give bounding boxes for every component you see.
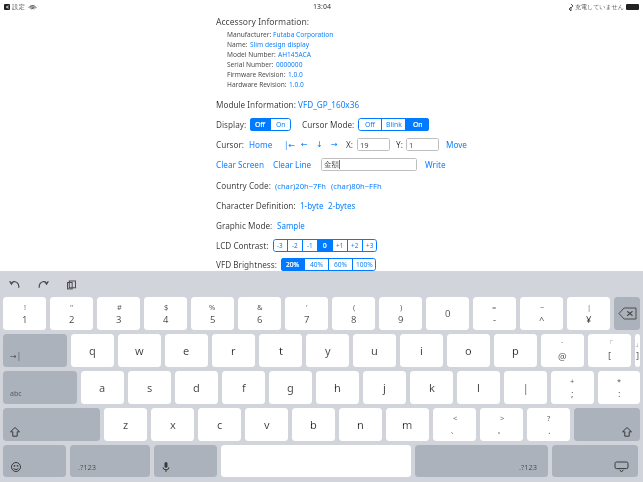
button[interactable]: h bbox=[316, 371, 359, 404]
button[interactable]: Cursor right bbox=[327, 140, 342, 149]
button[interactable]: Backspace bbox=[614, 297, 640, 330]
button[interactable]: Shift bbox=[3, 408, 100, 441]
button[interactable]: r bbox=[212, 334, 255, 367]
button[interactable]: +3 bbox=[363, 239, 377, 252]
button[interactable]: ( bbox=[332, 297, 375, 330]
button[interactable]: | bbox=[504, 371, 547, 404]
button[interactable]: c bbox=[198, 408, 241, 441]
button[interactable]: Move bbox=[446, 139, 467, 150]
button[interactable]: & bbox=[238, 297, 281, 330]
button[interactable]: ' bbox=[285, 297, 328, 330]
button[interactable]: < bbox=[4, 4, 10, 10]
button[interactable]: -2 bbox=[288, 239, 302, 252]
button[interactable]: Dictation bbox=[154, 445, 217, 477]
button[interactable]: On bbox=[406, 118, 429, 131]
button[interactable]: x bbox=[151, 408, 194, 441]
button[interactable]: Emoji bbox=[3, 445, 66, 477]
button[interactable]: 0 bbox=[318, 239, 332, 252]
button[interactable]: Tab bbox=[3, 334, 67, 367]
button[interactable]: + bbox=[551, 371, 594, 404]
button[interactable]: d bbox=[175, 371, 218, 404]
staticText: ` bbox=[561, 339, 564, 349]
button[interactable]: On bbox=[271, 118, 291, 131]
button[interactable]: .?123 bbox=[70, 445, 150, 477]
button[interactable]: # bbox=[97, 297, 140, 330]
button[interactable]: f bbox=[222, 371, 265, 404]
button[interactable]: y bbox=[306, 334, 349, 367]
button[interactable]: Letter mode bbox=[3, 371, 77, 404]
button[interactable]: a bbox=[81, 371, 124, 404]
button[interactable]: j bbox=[363, 371, 406, 404]
button[interactable]: 1 bbox=[406, 138, 439, 151]
button[interactable]: 0 bbox=[426, 297, 469, 330]
button[interactable]: 「 bbox=[588, 334, 631, 367]
button[interactable]: e bbox=[165, 334, 208, 367]
button[interactable]: Clear Screen bbox=[216, 159, 264, 170]
button[interactable]: ! bbox=[3, 297, 46, 330]
button[interactable]: | bbox=[567, 297, 610, 330]
button[interactable]: Cursor start bbox=[282, 139, 297, 150]
button[interactable]: < bbox=[433, 408, 476, 441]
button[interactable]: (char)20h~7Fh bbox=[275, 181, 326, 191]
staticText: 0 bbox=[445, 307, 451, 320]
button[interactable]: 20% bbox=[281, 258, 304, 271]
button[interactable]: Hide keyboard bbox=[552, 445, 638, 477]
button[interactable]: +2 bbox=[348, 239, 362, 252]
button[interactable]: (char)80h~FFh bbox=[331, 181, 382, 191]
button[interactable]: 60% bbox=[329, 258, 352, 271]
button[interactable]: Off bbox=[358, 118, 381, 131]
button[interactable]: b bbox=[292, 408, 335, 441]
button[interactable]: 2-bytes bbox=[328, 200, 356, 211]
button[interactable]: Clear Line bbox=[273, 159, 312, 170]
button[interactable]: Paste bbox=[64, 277, 78, 291]
button[interactable]: z bbox=[104, 408, 147, 441]
button[interactable]: Off bbox=[250, 118, 270, 131]
button[interactable]: $ bbox=[144, 297, 187, 330]
button[interactable]: p bbox=[494, 334, 537, 367]
button[interactable]: VFD_GP_160x36 bbox=[298, 99, 360, 110]
button[interactable]: Blink bbox=[382, 118, 405, 131]
button[interactable]: Sample bbox=[277, 220, 305, 231]
button[interactable]: i bbox=[400, 334, 443, 367]
button[interactable]: 1-byte bbox=[300, 200, 324, 211]
button[interactable]: Home bbox=[249, 139, 273, 150]
button[interactable]: .?123 bbox=[415, 445, 548, 477]
staticText: m bbox=[402, 417, 413, 432]
button[interactable]: u bbox=[353, 334, 396, 367]
button[interactable]: ~ bbox=[520, 297, 563, 330]
button[interactable]: v bbox=[245, 408, 288, 441]
button[interactable]: 100% bbox=[353, 258, 376, 271]
button[interactable]: * bbox=[598, 371, 640, 404]
button[interactable]: k bbox=[410, 371, 453, 404]
button[interactable]: -3 bbox=[273, 239, 287, 252]
button[interactable]: Write bbox=[425, 159, 446, 170]
button[interactable]: ` bbox=[541, 334, 584, 367]
button[interactable]: g bbox=[269, 371, 312, 404]
button[interactable]: > bbox=[480, 408, 523, 441]
button[interactable]: q bbox=[71, 334, 114, 367]
button[interactable]: ) bbox=[379, 297, 422, 330]
button[interactable]: Shift bbox=[574, 408, 640, 441]
button[interactable]: +1 bbox=[333, 239, 347, 252]
button[interactable]: = bbox=[473, 297, 516, 330]
button[interactable]: Cursor down bbox=[312, 140, 327, 149]
button[interactable]: l bbox=[457, 371, 500, 404]
button[interactable]: 19 bbox=[357, 138, 390, 151]
button[interactable]: o bbox=[447, 334, 490, 367]
button[interactable]: m bbox=[386, 408, 429, 441]
button[interactable]: t bbox=[259, 334, 302, 367]
button[interactable]: w bbox=[118, 334, 161, 367]
button[interactable]: ? bbox=[527, 408, 570, 441]
button[interactable]: Cursor left bbox=[297, 140, 312, 149]
button[interactable]: 40% bbox=[305, 258, 328, 271]
button[interactable]: " bbox=[50, 297, 93, 330]
button[interactable]: Redo bbox=[36, 277, 50, 291]
button[interactable]: % bbox=[191, 297, 234, 330]
button[interactable]: 」 bbox=[635, 334, 640, 367]
button[interactable]: -1 bbox=[303, 239, 317, 252]
button[interactable]: Undo bbox=[8, 277, 22, 291]
button[interactable]: s bbox=[128, 371, 171, 404]
button[interactable]: 金額 bbox=[321, 158, 417, 171]
button[interactable]: n bbox=[339, 408, 382, 441]
